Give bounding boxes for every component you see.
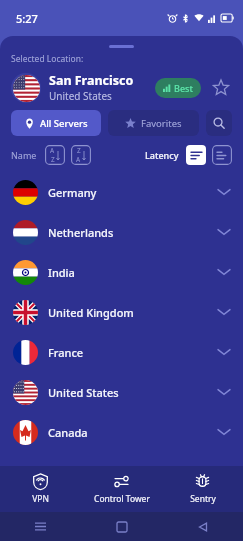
button[interactable]: Netherlands (0, 212, 243, 252)
staticText: Z (77, 146, 81, 155)
button[interactable]: Best (155, 78, 201, 98)
button[interactable]: Back (162, 512, 243, 541)
staticText: Name (11, 149, 37, 161)
button[interactable]: VPN (0, 466, 81, 512)
button[interactable]: India (0, 252, 243, 292)
button[interactable]: Control Tower (81, 466, 162, 512)
staticText: Netherlands (48, 225, 218, 240)
button[interactable]: Sort by latency ascending (186, 145, 206, 165)
staticText: United Kingdom (48, 305, 218, 320)
button[interactable]: Sort Z to A (71, 145, 91, 165)
staticText: Sentry (190, 493, 216, 505)
staticText: France (48, 345, 218, 360)
button[interactable]: San Francisco (11, 72, 232, 103)
staticText: A (50, 146, 55, 155)
staticText: Favorites (141, 117, 182, 130)
staticText: San Francisco (49, 72, 134, 89)
staticText: Canada (48, 425, 218, 440)
staticText: 5:27 (16, 11, 38, 26)
staticText: United States (48, 385, 218, 400)
button[interactable]: Favorites (108, 110, 199, 136)
button[interactable]: Sort A to Z (45, 145, 65, 165)
button[interactable]: Favorite (210, 77, 232, 99)
button[interactable]: Sort by latency descending (212, 145, 232, 165)
staticText: VPN (32, 493, 49, 505)
button[interactable]: United Kingdom (0, 292, 243, 332)
button[interactable]: All Servers (11, 110, 101, 136)
staticText: Selected Location: (11, 53, 84, 65)
button[interactable]: Recent apps (0, 512, 81, 541)
button[interactable]: France (0, 332, 243, 372)
staticText: All Servers (40, 117, 88, 130)
staticText: Z (51, 155, 55, 164)
staticText: Control Tower (94, 493, 150, 505)
staticText: India (48, 265, 218, 280)
staticText: Latency (145, 149, 179, 161)
button[interactable]: Germany (0, 172, 243, 212)
button[interactable]: Home (81, 512, 162, 541)
staticText: United States (49, 89, 112, 103)
staticText: Germany (48, 185, 218, 200)
button[interactable]: Canada (0, 412, 243, 452)
staticText: Best (174, 82, 193, 94)
button[interactable]: Sentry (162, 466, 243, 512)
button[interactable]: United States (0, 372, 243, 412)
staticText: A (76, 155, 81, 164)
button[interactable]: Search (206, 110, 232, 136)
